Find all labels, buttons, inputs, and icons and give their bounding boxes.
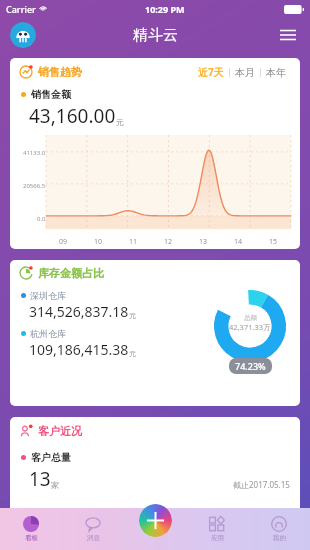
staticText: 总额 (244, 314, 257, 322)
button[interactable]: App logo (10, 22, 36, 48)
staticText: 库存金额占比 (38, 266, 104, 280)
staticText: 15 (269, 237, 278, 247)
staticText: Carrier (6, 3, 36, 15)
staticText: 我的 (273, 534, 286, 542)
staticText: 314,526,837.18 (29, 302, 129, 321)
staticText: 109,186,415.38 (29, 340, 129, 359)
staticText: 42,371.33万 (229, 322, 271, 332)
staticText: 深圳仓库 (30, 290, 66, 301)
staticText: 13 (199, 237, 208, 247)
staticText: 元 (116, 117, 124, 127)
staticText: 20566.5 (23, 182, 46, 190)
button[interactable]: 销售趋势 (10, 58, 300, 249)
staticText: 家 (51, 480, 59, 490)
staticText: 本月 (235, 66, 255, 79)
staticText: 客户总量 (31, 451, 71, 464)
staticText: 近7天 (198, 65, 224, 79)
staticText: 截止2017.05.15 (233, 479, 290, 490)
staticText: 14 (234, 237, 243, 247)
button[interactable]: 消息 (62, 508, 124, 550)
staticText: 杭州仓库 (30, 328, 66, 339)
staticText: 元 (129, 349, 136, 358)
button[interactable]: 我的 (248, 508, 310, 550)
staticText: 41133.0 (23, 149, 46, 157)
staticText: 10:29 PM (145, 3, 185, 15)
staticText: 0.0 (37, 215, 46, 223)
button[interactable]: 客户近况 (10, 417, 300, 517)
staticText: 元 (129, 311, 136, 320)
button[interactable]: 近7天 (193, 62, 229, 82)
staticText: 本年 (266, 66, 286, 79)
button[interactable]: 本年 (261, 63, 291, 82)
button[interactable]: Menu (276, 23, 300, 47)
staticText: 精斗云 (133, 26, 178, 45)
staticText: 74.23% (235, 360, 266, 372)
staticText: 12 (164, 237, 173, 247)
staticText: 13 (29, 466, 51, 492)
button[interactable]: 库存金额占比 (10, 260, 300, 406)
staticText: 10 (94, 237, 103, 247)
button[interactable]: Add (139, 504, 172, 537)
button[interactable]: 看板 (0, 508, 62, 550)
staticText: 销售趋势 (38, 65, 82, 79)
staticText: 09 (59, 237, 68, 247)
staticText: 应用 (211, 534, 224, 542)
staticText: 客户近况 (38, 424, 82, 438)
staticText: 销售金额 (31, 88, 71, 101)
button[interactable]: 本月 (230, 63, 260, 82)
button[interactable]: 应用 (186, 508, 248, 550)
staticText: 看板 (25, 534, 38, 542)
staticText: 消息 (87, 534, 100, 542)
button[interactable]: 74.23% (235, 360, 266, 372)
staticText: 11 (129, 237, 138, 247)
staticText: 43,160.00 (29, 103, 116, 129)
